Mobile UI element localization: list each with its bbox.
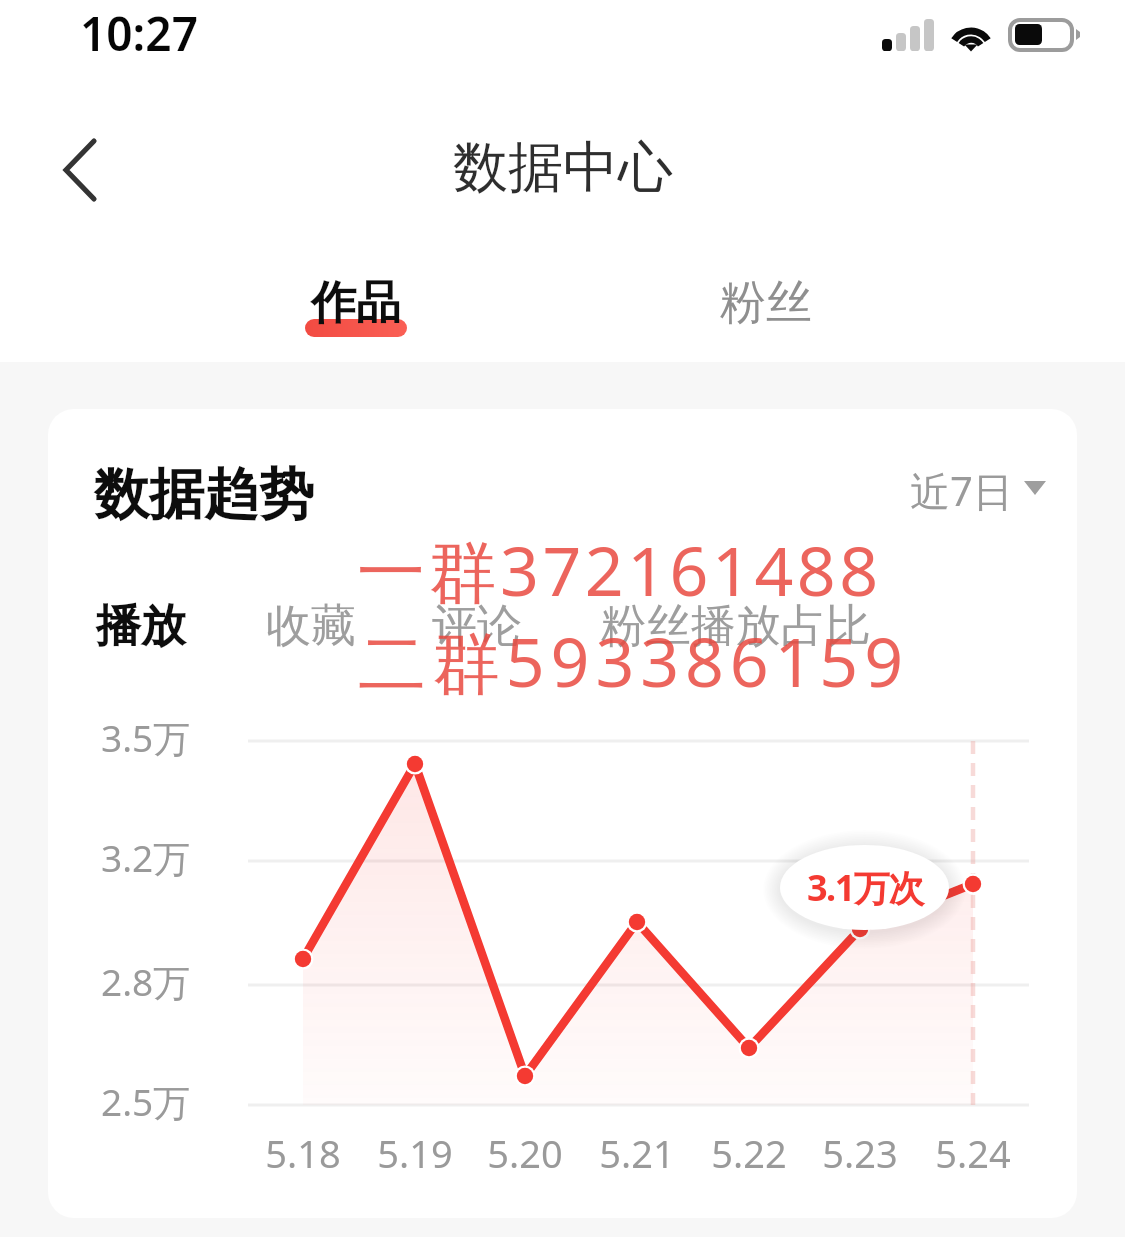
button[interactable]: 播放 (96, 598, 186, 656)
staticText: 5.20 (465, 1127, 585, 1179)
staticText: 10:27 (80, 2, 198, 65)
button[interactable]: 收藏 (266, 598, 356, 656)
staticText: 近7日 (910, 463, 1013, 513)
button[interactable]: 粉丝 (686, 252, 846, 362)
staticText: 收藏 (266, 598, 356, 655)
staticText: 评论 (432, 598, 522, 655)
staticText: 播放 (96, 598, 186, 655)
button[interactable]: 3.1万次 (780, 845, 949, 930)
staticText: 2.5万 (101, 1076, 191, 1127)
staticText: 5.21 (577, 1127, 697, 1179)
staticText: 5.23 (800, 1127, 920, 1179)
staticText: 数据趋势 (94, 460, 314, 529)
staticText: 粉丝 (720, 274, 812, 332)
button[interactable]: 评论 (432, 598, 522, 656)
button[interactable]: 近7日 (910, 463, 1046, 513)
button[interactable]: 作品 (276, 252, 436, 362)
staticText: 3.1万次 (807, 863, 923, 912)
staticText: 2.8万 (101, 956, 191, 1007)
staticText: 5.24 (913, 1127, 1033, 1179)
staticText: 5.19 (355, 1127, 475, 1179)
staticText: 3.5万 (101, 712, 191, 763)
button[interactable]: Back (22, 127, 108, 213)
staticText: 二群593386159 (358, 614, 909, 707)
button[interactable]: 粉丝播放占比 (601, 598, 871, 656)
staticText: 作品 (311, 275, 401, 332)
staticText: 5.18 (243, 1127, 363, 1179)
staticText: 5.22 (689, 1127, 809, 1179)
staticText: 3.2万 (101, 832, 191, 883)
staticText: 粉丝播放占比 (601, 598, 871, 655)
staticText: 数据中心 (453, 133, 673, 202)
staticText: 一群372161488 (357, 523, 882, 616)
